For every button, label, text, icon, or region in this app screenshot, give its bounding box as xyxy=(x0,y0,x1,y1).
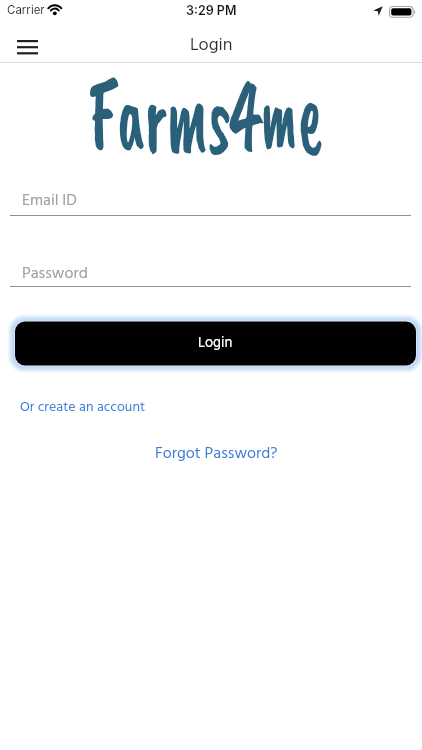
staticText: Carrier xyxy=(7,3,45,17)
staticText: Login xyxy=(198,332,233,355)
staticText: Farms4me xyxy=(88,49,322,182)
staticText: Or create an account xyxy=(20,396,146,418)
staticText: Forgot Password? xyxy=(155,441,278,467)
button[interactable]: Forgot Password? xyxy=(155,441,278,467)
staticText: Login xyxy=(190,31,233,60)
button[interactable]: Email ID xyxy=(10,183,411,217)
staticText: Password xyxy=(22,261,88,287)
button[interactable]: Or create an account xyxy=(20,396,146,418)
button[interactable]: Password xyxy=(10,255,411,289)
staticText: Email ID xyxy=(22,188,77,214)
button[interactable] xyxy=(8,33,46,61)
button[interactable]: Login xyxy=(15,321,416,365)
staticText: 3:29 PM xyxy=(186,3,237,18)
